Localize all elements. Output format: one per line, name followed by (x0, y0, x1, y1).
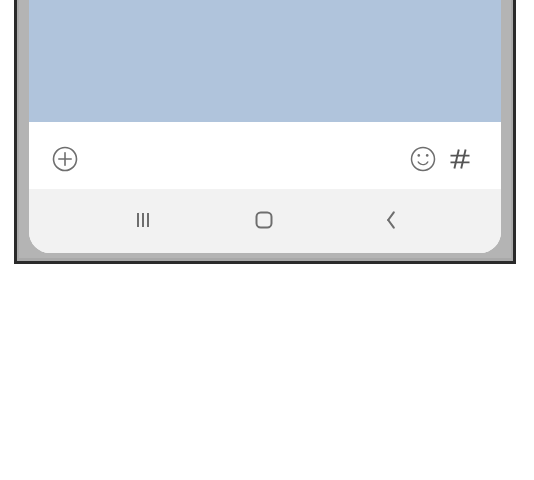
button[interactable]: Recent apps (121, 198, 165, 242)
button[interactable]: Stickers (442, 141, 478, 177)
button[interactable]: Emoji (405, 141, 441, 177)
button[interactable]: Home (242, 198, 286, 242)
button[interactable]: Back (369, 198, 413, 242)
button[interactable]: Add attachment (47, 141, 83, 177)
